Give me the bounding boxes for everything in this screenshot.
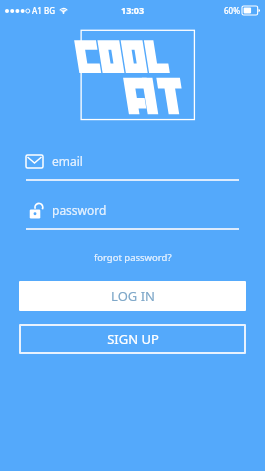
button[interactable]: Email field	[26, 148, 239, 174]
staticText: 13:03	[121, 4, 145, 16]
button[interactable]: Password field	[26, 197, 239, 223]
button[interactable]: LOG IN	[19, 281, 246, 311]
staticText: email	[52, 153, 83, 169]
staticText: password	[52, 202, 107, 218]
staticText: forgot password?	[94, 251, 172, 264]
staticText: LOG IN	[111, 287, 155, 305]
staticText: SIGN UP	[107, 330, 159, 348]
button[interactable]: SIGN UP	[19, 324, 246, 354]
button[interactable]: forgot password?	[86, 248, 180, 267]
staticText: A1 BG	[32, 5, 55, 16]
staticText: 60%	[224, 5, 240, 16]
